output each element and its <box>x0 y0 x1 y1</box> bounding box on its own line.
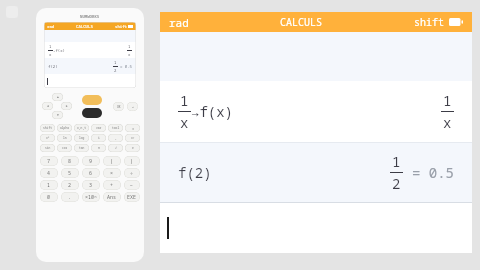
staticText: + <box>110 182 114 189</box>
staticText: 1 <box>180 91 189 110</box>
button[interactable]: + <box>103 180 121 190</box>
button[interactable]: Power <box>82 108 102 118</box>
button[interactable]: ) <box>124 156 140 166</box>
button[interactable]: var <box>91 124 106 132</box>
button[interactable]: Ans <box>103 192 121 202</box>
button[interactable]: 6 <box>82 168 100 178</box>
button[interactable]: log <box>74 134 89 142</box>
button[interactable]: cos <box>57 144 72 152</box>
staticText: , <box>115 136 117 140</box>
staticText: x <box>180 113 189 132</box>
staticText: Ans <box>107 194 117 201</box>
staticText: f(2) <box>48 64 58 69</box>
staticText: shift <box>115 24 127 29</box>
button[interactable]: 3 <box>82 180 100 190</box>
staticText: 1 <box>114 60 117 65</box>
staticText: 1 <box>443 91 452 110</box>
staticText: 6 <box>89 170 93 177</box>
staticText: 2 <box>68 182 72 189</box>
staticText: CALCULS <box>76 24 93 29</box>
staticText: 1 <box>128 44 131 49</box>
button[interactable]: 0 <box>40 192 58 202</box>
staticText: tool <box>112 126 120 130</box>
staticText: e <box>132 146 134 150</box>
button[interactable]: tool <box>108 124 123 132</box>
staticText: ÷ <box>130 170 134 177</box>
button[interactable]: e <box>125 144 140 152</box>
staticText: x,n,t <box>77 126 87 130</box>
staticText: 2 <box>114 68 117 73</box>
staticText: EXE <box>127 194 137 201</box>
button[interactable]: alpha <box>57 124 72 132</box>
button[interactable]: 5 <box>61 168 79 178</box>
staticText: xʸ <box>131 136 135 140</box>
staticText: 4 <box>47 170 51 177</box>
button[interactable]: f(2) <box>160 143 472 202</box>
button[interactable]: . <box>61 192 79 202</box>
staticText: ▼ <box>57 113 59 117</box>
staticText: ) <box>130 158 134 165</box>
staticText: − <box>130 182 134 189</box>
staticText: ▶ <box>65 104 69 108</box>
button[interactable]: tan <box>74 144 89 152</box>
button[interactable]: ▶ <box>61 102 72 110</box>
button[interactable]: ▲ <box>52 93 63 101</box>
button[interactable]: Home <box>82 95 102 105</box>
button[interactable]: 1 <box>40 180 58 190</box>
button[interactable]: 4 <box>40 168 58 178</box>
staticText: ln <box>63 136 67 140</box>
staticText: tan <box>79 146 85 150</box>
button[interactable]: 1 <box>160 81 472 142</box>
button[interactable]: 8 <box>61 156 79 166</box>
staticText: × <box>110 170 114 177</box>
button[interactable]: 9 <box>82 156 100 166</box>
staticText: 0 <box>47 194 51 201</box>
staticText: x <box>128 52 131 57</box>
button[interactable]: ×10ⁿ <box>82 192 100 202</box>
staticText: π <box>98 146 100 150</box>
staticText: 8 <box>68 158 72 165</box>
button[interactable]: ◀ <box>42 102 53 110</box>
staticText: ×10ⁿ <box>85 194 98 201</box>
staticText: = 0.5 <box>120 64 132 69</box>
button[interactable]: x,n,t <box>74 124 89 132</box>
button[interactable]: ln <box>57 134 72 142</box>
staticText: shift <box>414 15 444 29</box>
button[interactable]: 2 <box>61 180 79 190</box>
staticText: OK <box>117 105 121 109</box>
button[interactable]: EXE <box>124 192 140 202</box>
button[interactable]: xʸ <box>125 134 140 142</box>
button[interactable]: π <box>91 144 106 152</box>
staticText: cos <box>62 146 68 150</box>
button[interactable]: Directional pad <box>42 93 72 119</box>
button[interactable]: × <box>103 168 121 178</box>
button[interactable]: √ <box>108 144 123 152</box>
staticText: shift <box>43 126 53 130</box>
staticText: 7 <box>47 158 51 165</box>
button[interactable]: rad <box>160 12 472 32</box>
button[interactable]: 7 <box>40 156 58 166</box>
button[interactable]: ÷ <box>124 168 140 178</box>
button[interactable]: shift <box>40 124 55 132</box>
staticText: 9 <box>89 158 93 165</box>
button[interactable]: , <box>108 134 123 142</box>
button[interactable]: − <box>124 180 140 190</box>
button[interactable]: ( <box>103 156 121 166</box>
button[interactable]: ▼ <box>52 111 63 119</box>
button[interactable]: x² <box>40 134 55 142</box>
button[interactable]: ↵ <box>127 102 138 111</box>
button[interactable]: OK <box>113 102 124 111</box>
button[interactable]: i <box>91 134 106 142</box>
staticText: ⌫ <box>132 127 134 130</box>
staticText: rad <box>47 24 55 29</box>
staticText: alpha <box>60 126 70 130</box>
staticText: = 0.5 <box>412 163 454 182</box>
button[interactable] <box>160 203 472 253</box>
button[interactable]: sin <box>40 144 55 152</box>
button[interactable]: ⌫ <box>125 124 140 132</box>
staticText: log <box>79 136 85 140</box>
staticText: 1 <box>49 44 52 49</box>
staticText: CALCULS <box>280 15 322 29</box>
staticText: →f(x) <box>53 48 65 53</box>
